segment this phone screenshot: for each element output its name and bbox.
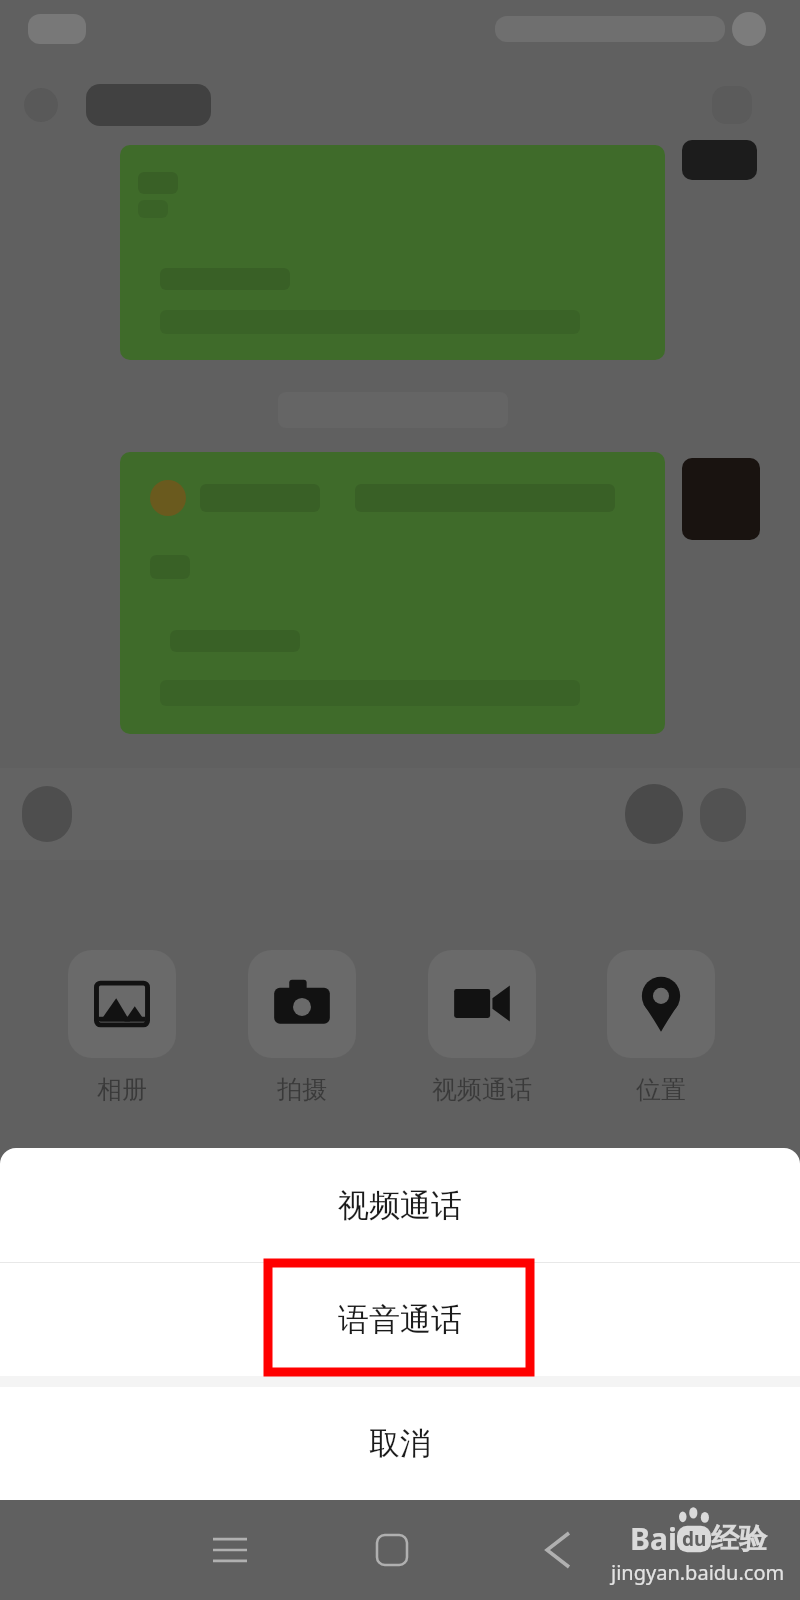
staticText: jingyan.baidu.com <box>611 1559 785 1586</box>
button[interactable]: Recents <box>190 1518 270 1582</box>
button[interactable]: Home <box>352 1518 432 1582</box>
button[interactable]: 取消 <box>0 1387 800 1500</box>
button[interactable]: 视频通话 <box>0 1148 800 1262</box>
staticText: du <box>682 1526 707 1552</box>
button[interactable]: 相册 <box>62 950 182 1105</box>
staticText: 拍摄 <box>277 1074 327 1105</box>
staticText: 视频通话 <box>338 1186 462 1225</box>
button[interactable]: 语音通话 <box>0 1263 800 1376</box>
staticText: 经验 <box>711 1521 767 1556</box>
button[interactable]: 位置 <box>601 950 721 1105</box>
button[interactable]: 视频通话 <box>422 950 542 1105</box>
staticText: 位置 <box>636 1074 686 1105</box>
staticText: 语音通话 <box>338 1300 462 1339</box>
staticText: Bai <box>630 1518 677 1559</box>
button[interactable]: 拍摄 <box>242 950 362 1105</box>
staticText: 取消 <box>369 1424 431 1463</box>
button[interactable]: Back <box>518 1518 598 1582</box>
staticText: 视频通话 <box>432 1074 532 1105</box>
staticText: 相册 <box>97 1074 147 1105</box>
